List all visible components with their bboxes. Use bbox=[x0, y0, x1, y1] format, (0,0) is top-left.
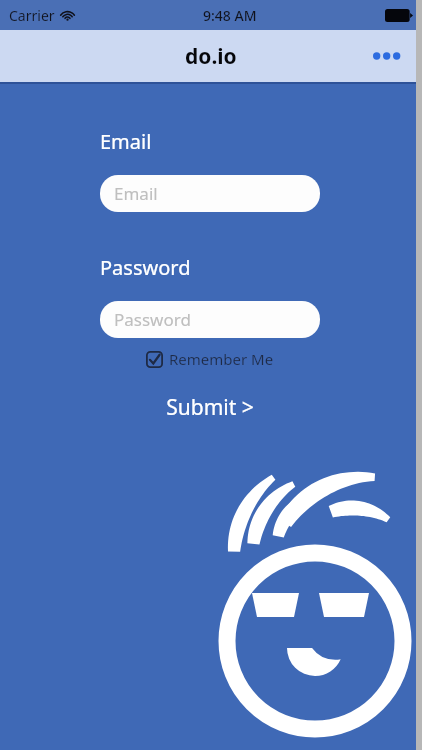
staticText: Submit > bbox=[166, 393, 254, 422]
staticText: Email bbox=[114, 182, 158, 205]
button[interactable]: Remember Me bbox=[144, 347, 276, 371]
staticText: Password bbox=[114, 308, 191, 331]
staticText: Remember Me bbox=[169, 349, 274, 369]
button[interactable]: Password bbox=[100, 301, 320, 338]
button[interactable]: Submit > bbox=[156, 389, 264, 426]
button[interactable]: More options bbox=[364, 36, 408, 76]
button[interactable]: Email bbox=[100, 175, 320, 212]
staticText: Password bbox=[100, 254, 191, 281]
staticText: 9:48 AM bbox=[203, 6, 257, 25]
staticText: Email bbox=[100, 128, 152, 155]
staticText: do.io bbox=[185, 42, 237, 71]
staticText: Carrier bbox=[9, 6, 55, 25]
